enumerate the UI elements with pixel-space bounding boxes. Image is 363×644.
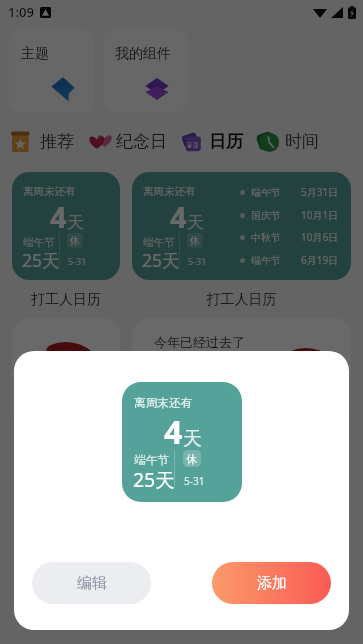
- staticText: 5-31: [184, 474, 205, 488]
- staticText: 主题: [21, 45, 49, 63]
- staticText: 编辑: [77, 574, 107, 593]
- staticText: 5-31: [68, 255, 87, 267]
- staticText: 纪念日: [116, 131, 167, 152]
- staticText: 时间: [285, 131, 319, 152]
- staticText: 10月1日: [301, 208, 339, 222]
- button[interactable]: 编辑: [32, 562, 151, 604]
- staticText: 1:09: [8, 3, 34, 21]
- staticText: 离周末还有: [143, 185, 196, 198]
- staticText: 6月19日: [301, 253, 339, 267]
- button[interactable]: 日历: [180, 130, 243, 153]
- staticText: 端午节: [251, 254, 281, 267]
- staticText: 端午节: [23, 236, 55, 249]
- staticText: 端午节: [134, 453, 169, 468]
- staticText: 推荐: [40, 131, 74, 152]
- staticText: 国庆节: [251, 209, 281, 222]
- staticText: 5-31: [188, 255, 207, 267]
- staticText: 添加: [257, 574, 287, 593]
- staticText: 25天: [133, 466, 175, 493]
- staticText: 休: [70, 234, 80, 247]
- staticText: 日历: [209, 131, 243, 152]
- staticText: 端午节: [143, 236, 175, 249]
- staticText: 4: [164, 410, 183, 454]
- button[interactable]: 纪念日: [87, 130, 167, 153]
- staticText: 我的组件: [115, 45, 171, 63]
- button[interactable]: 主题: [9, 29, 94, 113]
- button[interactable]: 今年已经过去了: [132, 318, 351, 426]
- button[interactable]: 时间: [256, 130, 319, 153]
- staticText: 5月31日: [301, 185, 339, 199]
- button[interactable]: 我的组件: [103, 29, 188, 113]
- button[interactable]: 离周末还有: [12, 172, 120, 280]
- staticText: 打工人日历: [132, 291, 351, 309]
- staticText: 中秋节: [251, 231, 281, 244]
- staticText: 休: [190, 234, 200, 247]
- staticText: 4: [170, 197, 187, 236]
- button[interactable]: 推荐: [11, 130, 74, 153]
- staticText: 天: [67, 212, 84, 233]
- staticText: 离周末还有: [134, 396, 193, 411]
- staticText: 端午节: [251, 186, 281, 199]
- staticText: 离周末还有: [23, 185, 76, 198]
- button[interactable]: [12, 318, 120, 426]
- button[interactable]: 添加: [212, 562, 331, 604]
- staticText: 25天: [142, 248, 180, 272]
- staticText: 天: [183, 427, 202, 451]
- staticText: 10月6日: [301, 230, 339, 244]
- staticText: 天: [187, 212, 204, 233]
- button[interactable]: 离周末还有: [132, 172, 351, 280]
- staticText: 4: [50, 197, 67, 236]
- staticText: 今年已经过去了: [154, 334, 245, 350]
- staticText: 休: [186, 452, 198, 466]
- staticText: 25天: [22, 248, 60, 272]
- staticText: 打工人日历: [12, 291, 120, 309]
